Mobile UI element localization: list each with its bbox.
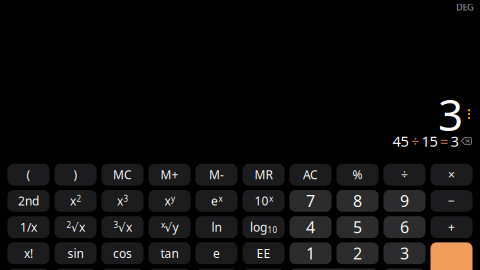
staticText: 2 — [353, 243, 362, 264]
button[interactable]: Rad — [7, 269, 49, 270]
button[interactable]: 5 — [336, 216, 378, 238]
staticText: 3 — [114, 219, 119, 230]
staticText: √y — [164, 219, 178, 235]
button[interactable]: Rand — [242, 269, 284, 270]
staticText: x — [164, 193, 170, 209]
staticText: cos — [113, 245, 132, 261]
staticText: x — [218, 193, 222, 204]
button[interactable]: AC — [289, 164, 331, 186]
button[interactable]: x — [54, 190, 96, 212]
button[interactable]: log — [242, 216, 284, 238]
staticText: 4 — [306, 216, 315, 238]
staticText: sin — [67, 245, 83, 261]
staticText: × — [448, 167, 455, 183]
staticText: 45 — [392, 131, 408, 151]
button[interactable]: ( — [7, 164, 49, 186]
staticText: x — [70, 193, 76, 209]
staticText: 1/x — [20, 219, 37, 235]
button[interactable]: DEG — [448, 1, 474, 12]
button[interactable]: e — [195, 190, 237, 212]
staticText: 6 — [400, 216, 409, 238]
button[interactable]: MR — [242, 164, 284, 186]
button[interactable]: π — [195, 269, 237, 270]
button[interactable]: EE — [242, 242, 284, 264]
button[interactable]: 2 — [336, 242, 378, 264]
staticText: M+ — [160, 167, 178, 183]
button[interactable]: 10 — [242, 190, 284, 212]
button[interactable]: sinh — [54, 269, 96, 270]
staticText: ln — [211, 219, 221, 235]
button[interactable]: % — [336, 164, 378, 186]
staticText: 3 — [450, 131, 458, 151]
button[interactable]: 0 — [289, 269, 378, 270]
staticText: 9 — [400, 190, 409, 211]
staticText: ( — [26, 167, 30, 183]
button[interactable]: 3 — [383, 242, 425, 264]
button[interactable]: M+ — [148, 164, 190, 186]
button[interactable]: tan — [148, 242, 190, 264]
staticText: 2nd — [18, 193, 39, 209]
staticText: = — [440, 131, 448, 151]
button[interactable]: 7 — [289, 190, 331, 212]
staticText: e — [211, 193, 218, 209]
button[interactable]: 1 — [289, 242, 331, 264]
staticText: 10 — [254, 193, 268, 209]
staticText: log — [250, 219, 267, 235]
staticText: x — [269, 193, 273, 204]
button[interactable]: 2 — [54, 216, 96, 238]
button[interactable]: + — [430, 216, 472, 238]
button[interactable]: x — [148, 216, 190, 238]
staticText: 3 — [438, 85, 463, 143]
button[interactable]: More — [466, 108, 472, 120]
staticText: √x — [118, 219, 132, 235]
button[interactable]: sin — [54, 242, 96, 264]
button[interactable]: e — [195, 242, 237, 264]
button[interactable]: cos — [101, 242, 143, 264]
staticText: ÷ — [401, 167, 408, 183]
button[interactable]: tanh — [148, 269, 190, 270]
staticText: x! — [24, 245, 33, 261]
staticText: MR — [254, 167, 272, 183]
staticText: e — [213, 245, 220, 261]
button[interactable]: 1/x — [7, 216, 49, 238]
staticText: x — [117, 193, 123, 209]
button[interactable]: ln — [195, 216, 237, 238]
button[interactable]: . — [383, 269, 425, 270]
button[interactable]: x — [101, 190, 143, 212]
button[interactable]: ) — [54, 164, 96, 186]
staticText: − — [448, 193, 455, 209]
staticText: 7 — [306, 190, 315, 211]
button[interactable]: x — [148, 190, 190, 212]
staticText: + — [448, 219, 455, 235]
staticText: ÷ — [411, 131, 419, 151]
staticText: EE — [256, 245, 270, 261]
staticText: 3 — [123, 193, 128, 204]
button[interactable]: 6 — [383, 216, 425, 238]
staticText: 8 — [353, 190, 362, 211]
staticText: 5 — [353, 216, 362, 238]
button[interactable]: cosh — [101, 269, 143, 270]
button[interactable]: M- — [195, 164, 237, 186]
button[interactable]: 9 — [383, 190, 425, 212]
staticText: 2 — [67, 219, 72, 230]
staticText: MC — [113, 167, 132, 183]
button[interactable]: 2nd — [7, 190, 49, 212]
button[interactable]: 4 — [289, 216, 331, 238]
button[interactable]: 3 — [101, 216, 143, 238]
staticText: DEG — [456, 1, 474, 13]
button[interactable]: × — [430, 164, 472, 186]
button[interactable]: − — [430, 190, 472, 212]
button[interactable]: 8 — [336, 190, 378, 212]
staticText: ) — [73, 167, 77, 183]
button[interactable]: = — [430, 242, 472, 270]
button[interactable]: MC — [101, 164, 143, 186]
staticText: M- — [209, 167, 224, 183]
staticText: AC — [303, 167, 318, 183]
button[interactable]: x! — [7, 242, 49, 264]
staticText: y — [171, 193, 175, 204]
staticText: % — [352, 167, 362, 183]
button[interactable]: ÷ — [383, 164, 425, 186]
staticText: 2 — [76, 193, 81, 204]
button[interactable]: Delete — [461, 137, 472, 145]
